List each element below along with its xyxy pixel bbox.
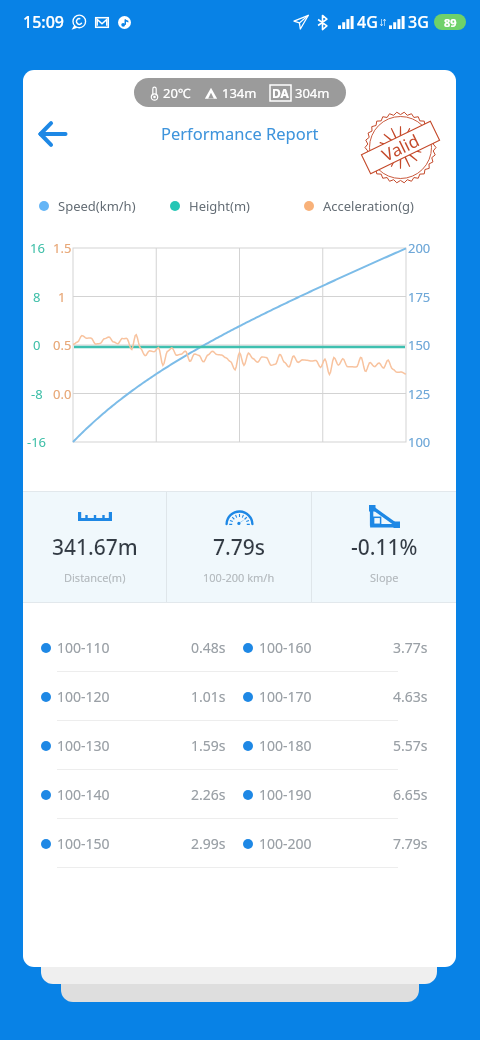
staticText: 100-170 — [259, 687, 312, 706]
staticText: 7.79s — [393, 834, 428, 853]
staticText: 100-140 — [57, 785, 110, 804]
staticText: 6.65s — [393, 785, 428, 804]
staticText: 100-150 — [57, 834, 110, 853]
staticText: Performance Report — [161, 122, 319, 144]
staticText: Distance(m) — [64, 570, 126, 585]
staticText: 0.5 — [53, 336, 72, 354]
staticText: 100-200 — [259, 834, 312, 853]
staticText: 1.59s — [191, 736, 226, 755]
staticText: 125 — [408, 385, 431, 403]
staticText: 100-160 — [259, 638, 312, 657]
staticText: 0.0 — [53, 385, 72, 403]
staticText: 8 — [33, 288, 41, 306]
staticText: 16 — [30, 239, 45, 257]
staticText: 100-200 km/h — [203, 570, 275, 585]
staticText: -16 — [27, 433, 47, 451]
staticText: Valid — [378, 129, 423, 166]
button[interactable]: 341.67m — [23, 491, 166, 603]
staticText: 15:09 — [23, 11, 64, 33]
staticText: 100-120 — [57, 687, 110, 706]
staticText: 200 — [408, 239, 431, 257]
staticText: 3.77s — [393, 638, 428, 657]
staticText: 100-110 — [57, 638, 110, 657]
staticText: 0 — [33, 336, 41, 354]
staticText: 100 — [408, 433, 431, 451]
staticText: DA — [272, 85, 289, 101]
staticText: 341.67m — [52, 533, 138, 562]
staticText: 1.01s — [191, 687, 226, 706]
staticText: 2.99s — [191, 834, 226, 853]
staticText: Slope — [370, 570, 399, 585]
button[interactable]: Back — [30, 112, 74, 156]
button[interactable]: 20℃ — [150, 78, 330, 107]
staticText: 1.5 — [53, 239, 72, 257]
staticText: 2.26s — [191, 785, 226, 804]
staticText: 100-130 — [57, 736, 110, 755]
staticText: 89 — [444, 15, 457, 30]
staticText: -0.11% — [351, 533, 418, 562]
staticText: 4.63s — [393, 687, 428, 706]
button[interactable]: 100-130 — [23, 721, 456, 770]
staticText: 1 — [58, 288, 66, 306]
staticText: Speed(km/h) — [58, 197, 136, 215]
staticText: 100-180 — [259, 736, 312, 755]
staticText: 7.79s — [213, 533, 265, 562]
button[interactable]: 7.79s — [167, 491, 311, 603]
staticText: 134m — [222, 84, 257, 102]
button[interactable]: 100-120 — [23, 672, 456, 721]
staticText: 0.48s — [191, 638, 226, 657]
button[interactable]: -0.11% — [312, 491, 456, 603]
staticText: Acceleration(g) — [323, 197, 414, 215]
staticText: 100-190 — [259, 785, 312, 804]
staticText: Height(m) — [189, 197, 250, 215]
staticText: 5.57s — [393, 736, 428, 755]
staticText: 4G — [357, 11, 378, 33]
button[interactable]: 100-140 — [23, 770, 456, 819]
staticText: 150 — [408, 336, 431, 354]
staticText: 20℃ — [163, 84, 191, 102]
staticText: -8 — [31, 385, 43, 403]
button[interactable]: 100-110 — [23, 623, 456, 672]
staticText: 3G — [408, 11, 429, 33]
button[interactable]: 100-150 — [23, 819, 456, 868]
staticText: 175 — [408, 288, 431, 306]
staticText: 304m — [295, 84, 330, 102]
